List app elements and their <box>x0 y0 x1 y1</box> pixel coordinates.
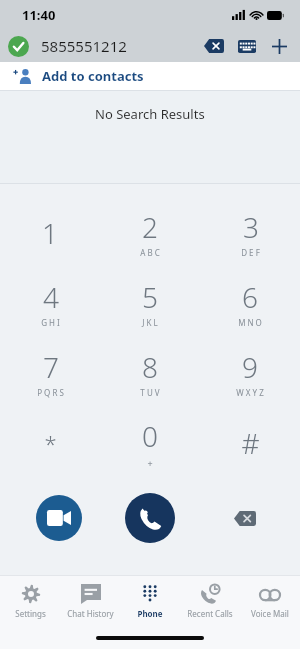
button[interactable]: Call <box>125 493 175 543</box>
staticText: Phone <box>137 608 163 619</box>
staticText: P Q R S <box>37 387 64 398</box>
button[interactable]: Add <box>267 35 291 57</box>
staticText: Voice Mail <box>251 608 289 619</box>
staticText: W X Y Z <box>236 387 264 398</box>
button[interactable]: Settings <box>0 576 60 626</box>
button[interactable]: Backspace <box>201 35 227 57</box>
staticText: A B C <box>140 247 160 258</box>
staticText: 6 <box>242 278 258 316</box>
staticText: 4 <box>43 278 59 316</box>
staticText: Chat History <box>67 608 114 619</box>
button[interactable]: 1 <box>0 198 100 268</box>
staticText: J K L <box>142 317 158 328</box>
button[interactable]: Keyboard <box>234 35 260 57</box>
button[interactable]: 5 <box>100 268 200 338</box>
staticText: G H I <box>41 317 60 328</box>
button[interactable]: 2 <box>100 198 200 268</box>
staticText: T U V <box>140 387 160 398</box>
button[interactable]: Voice Mail <box>240 576 300 626</box>
button[interactable]: Delete <box>228 504 262 532</box>
staticText: 11:40 <box>22 6 56 24</box>
staticText: Add to contacts <box>42 67 144 85</box>
button[interactable]: 7 <box>0 338 100 408</box>
staticText: 0 <box>142 417 158 455</box>
button[interactable]: Recent Calls <box>180 576 240 626</box>
staticText: 9 <box>242 348 258 386</box>
staticText: Recent Calls <box>187 608 233 619</box>
staticText: M N O <box>238 317 262 328</box>
staticText: No Search Results <box>95 105 205 123</box>
staticText: * <box>44 428 57 458</box>
staticText: Settings <box>15 608 46 619</box>
staticText: 8 <box>142 348 158 386</box>
button[interactable]: Phone <box>120 576 180 626</box>
button[interactable]: 9 <box>200 338 300 408</box>
button[interactable]: 3 <box>200 198 300 268</box>
button[interactable]: 0 <box>100 408 200 478</box>
staticText: D E F <box>241 247 260 258</box>
button[interactable]: 8 <box>100 338 200 408</box>
button[interactable]: # <box>200 408 300 478</box>
staticText: + <box>147 457 153 469</box>
button[interactable]: * <box>0 408 100 478</box>
button[interactable]: Chat History <box>60 576 120 626</box>
staticText: # <box>241 424 260 462</box>
staticText: 2 <box>142 208 158 246</box>
staticText: 5855551212 <box>41 36 127 56</box>
button[interactable]: 4 <box>0 268 100 338</box>
button[interactable]: Add to contacts <box>0 62 300 90</box>
staticText: 7 <box>43 348 59 386</box>
staticText: 5 <box>142 278 158 316</box>
staticText: 3 <box>243 208 259 246</box>
staticText: 1 <box>42 214 58 252</box>
button[interactable]: 6 <box>200 268 300 338</box>
button[interactable]: Video call <box>36 495 82 541</box>
